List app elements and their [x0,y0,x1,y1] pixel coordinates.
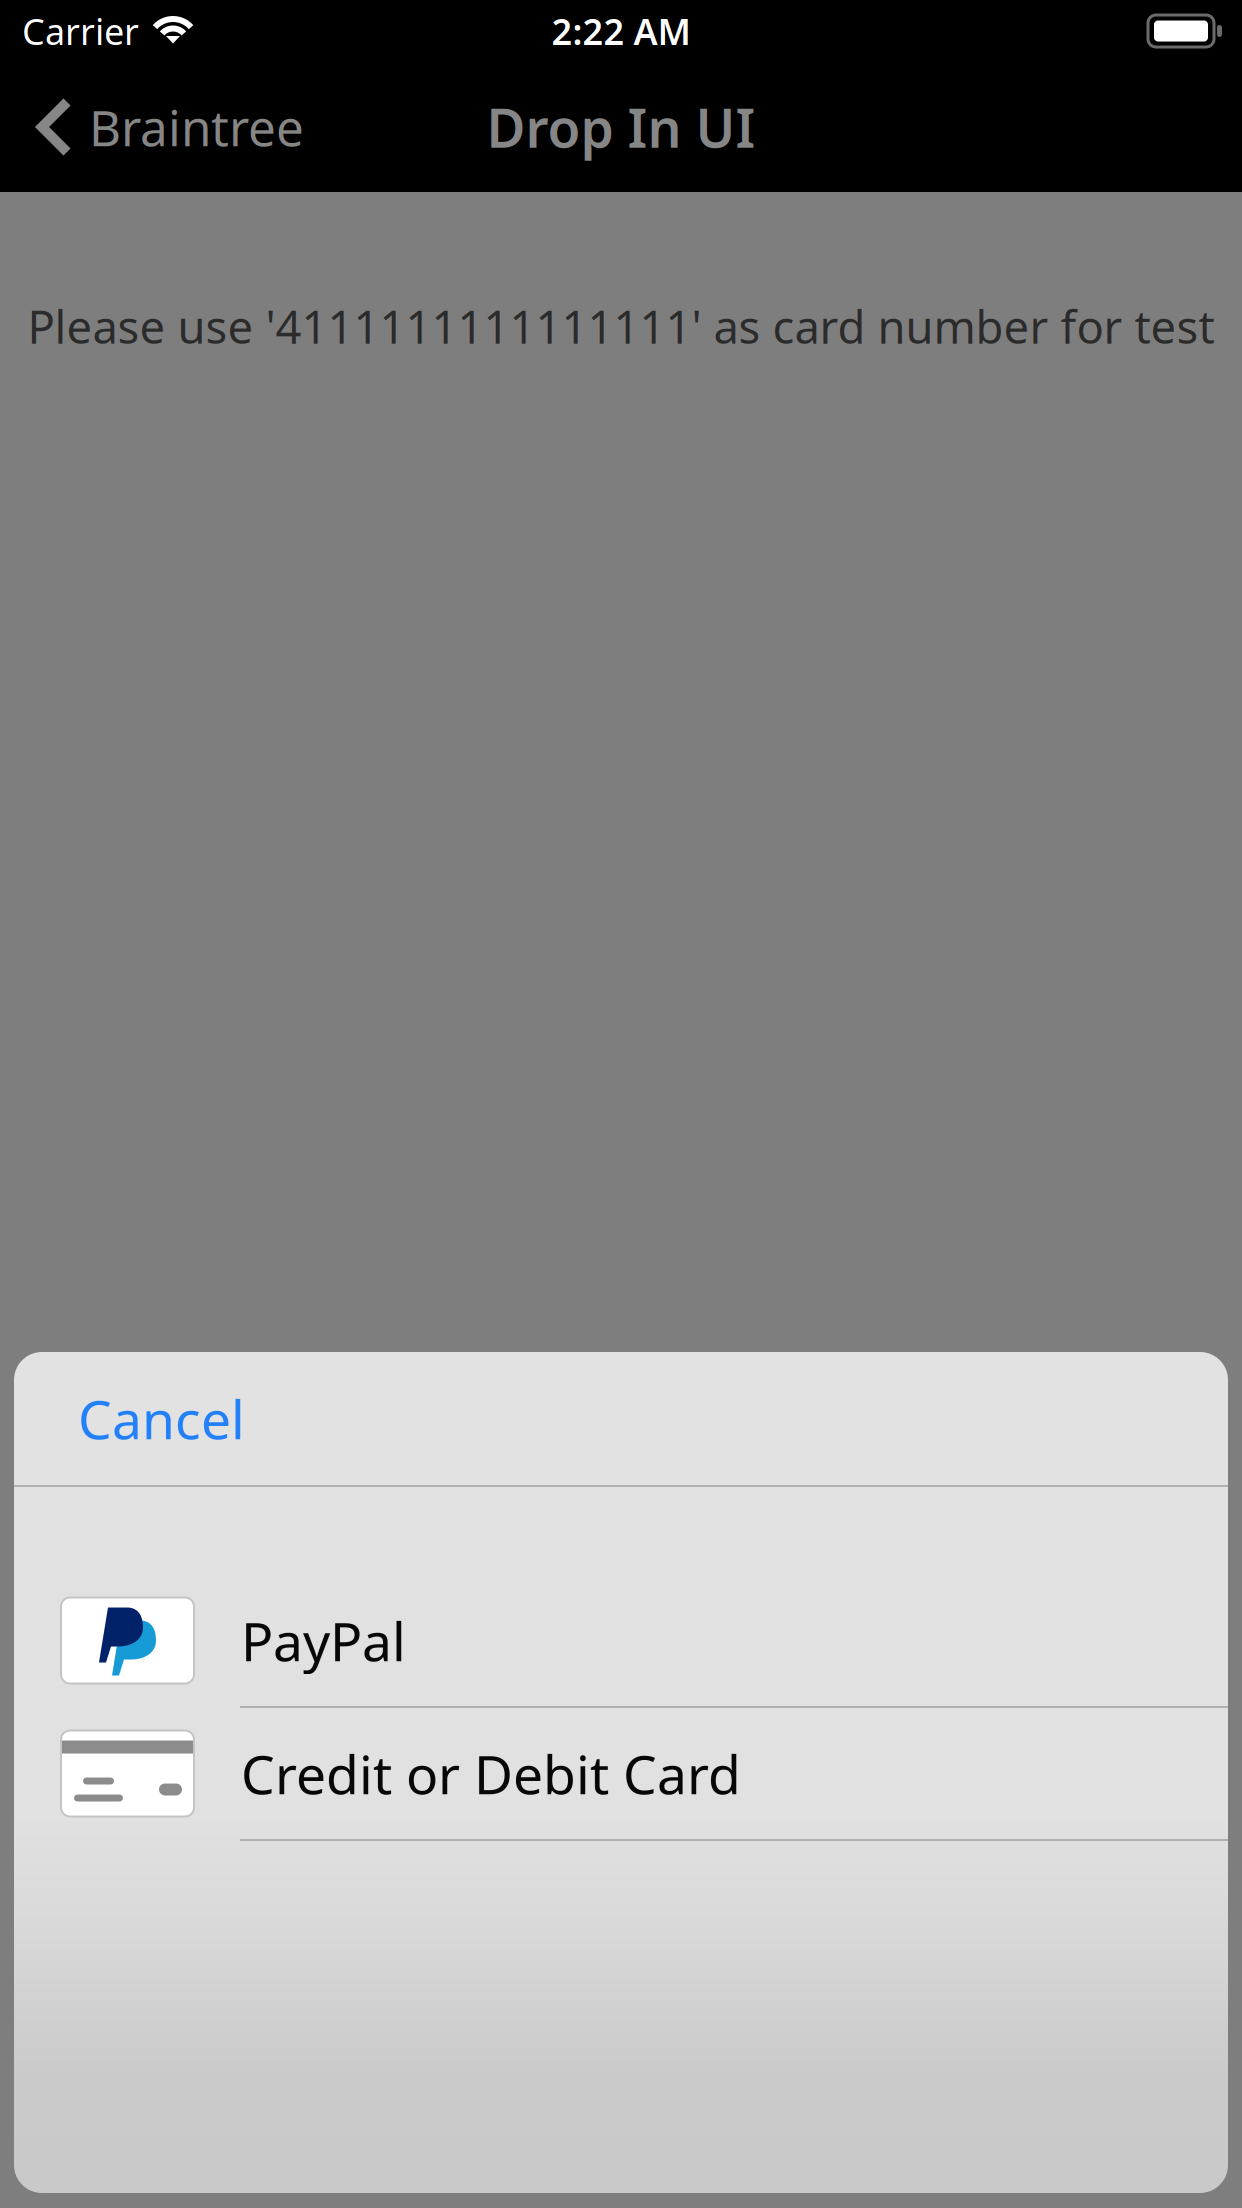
staticText: Braintree [89,94,304,160]
staticText: Drop In UI [486,92,755,162]
staticText: Credit or Debit Card [241,1738,741,1809]
staticText: Please use '4111111111111111' as card nu… [27,296,1214,356]
staticText: Cancel [78,1383,245,1454]
staticText: Carrier [22,7,139,55]
staticText: 2:22 AM [551,7,690,55]
button[interactable]: Back to Braintree [0,62,326,192]
button[interactable]: PayPal [14,1575,1228,1706]
button[interactable]: Cancel [14,1352,1228,1485]
button[interactable]: Credit or Debit Card [14,1708,1228,1839]
staticText: PayPal [241,1605,406,1676]
